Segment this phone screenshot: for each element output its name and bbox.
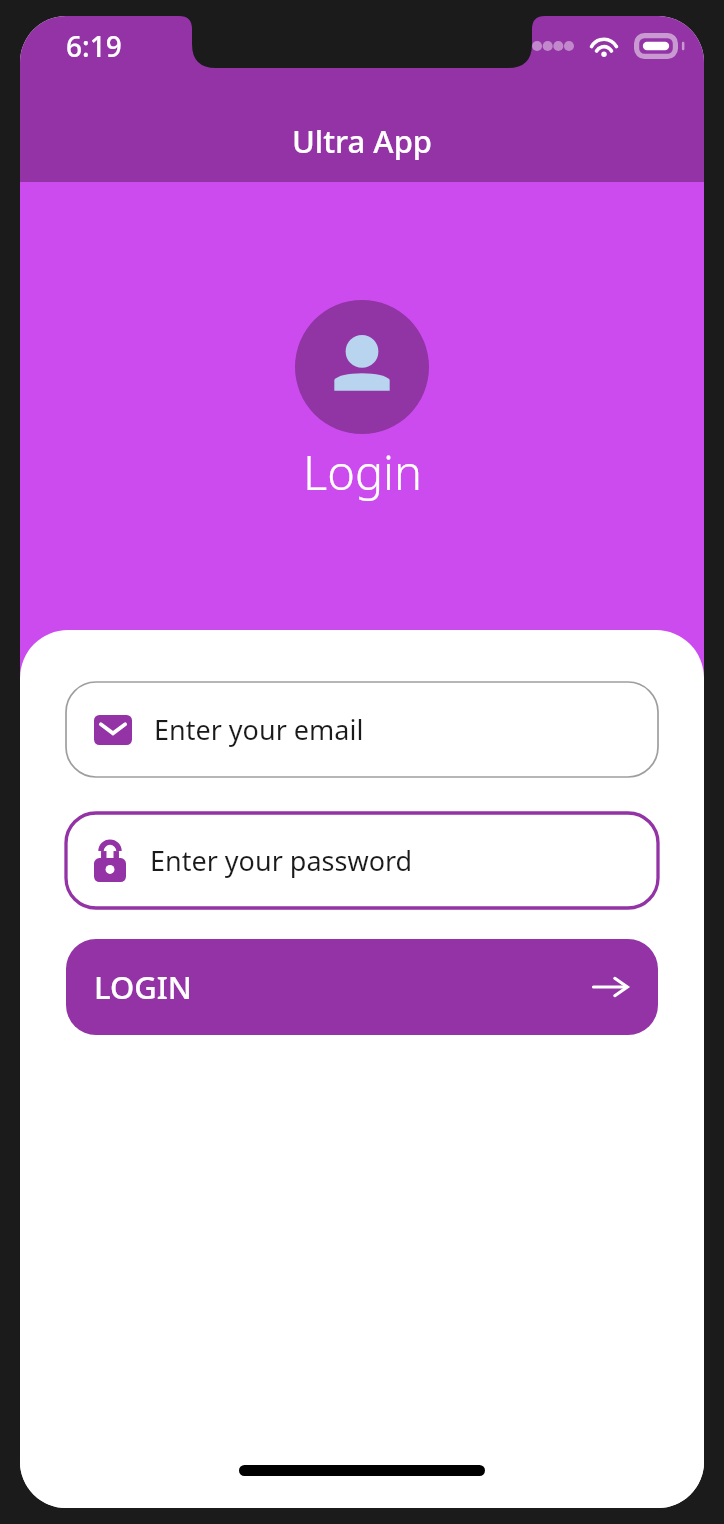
other: Submit login: [592, 972, 630, 1002]
staticText: Enter your email: [154, 711, 364, 748]
button[interactable]: Enter your password: [66, 813, 658, 908]
staticText: 6:19: [66, 27, 122, 65]
staticText: Enter your password: [150, 842, 413, 879]
staticText: LOGIN: [94, 966, 192, 1008]
staticText: Ultra App: [20, 120, 704, 162]
button[interactable]: LOGIN: [66, 939, 658, 1035]
staticText: Login: [303, 440, 422, 504]
button[interactable]: Enter your email: [66, 682, 658, 777]
